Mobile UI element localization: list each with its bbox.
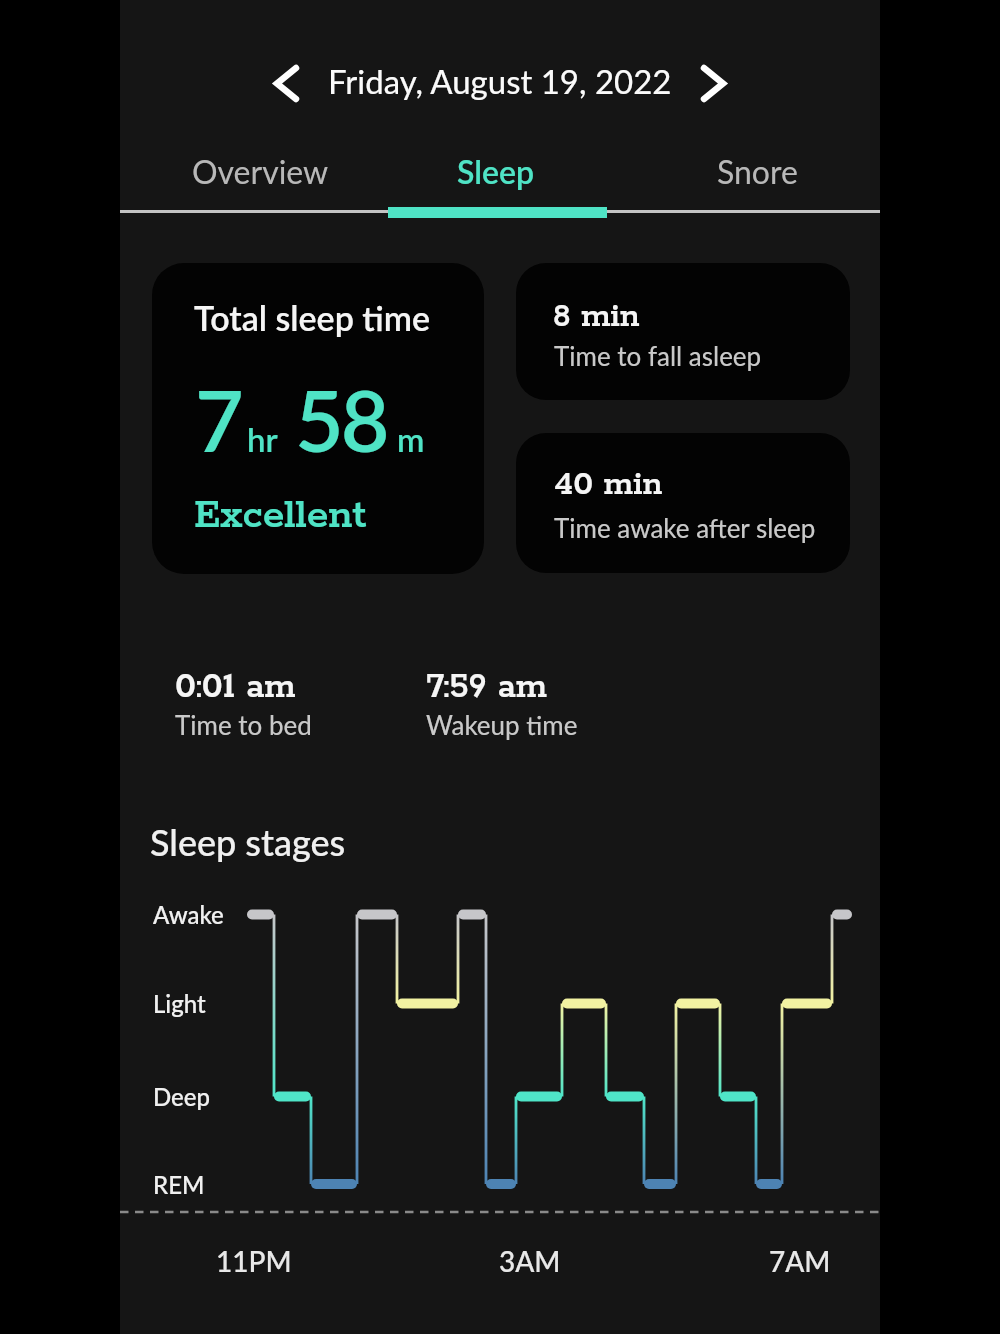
staticText: 8 min <box>553 297 640 338</box>
staticText: Excellent <box>194 491 367 541</box>
staticText: 3AM <box>499 1244 561 1278</box>
button[interactable]: 40 min <box>516 433 850 573</box>
staticText: REM <box>153 1170 205 1199</box>
staticText: 7:59 am <box>426 666 548 709</box>
staticText: Friday, August 19, 2022 <box>328 61 672 101</box>
button[interactable]: Total sleep time <box>152 263 484 574</box>
staticText: Sleep stages <box>150 820 346 863</box>
staticText: Deep <box>153 1082 211 1111</box>
button[interactable]: 8 min <box>516 263 850 400</box>
staticText: 58 <box>295 369 387 470</box>
staticText: Time to fall asleep <box>554 340 762 371</box>
staticText: 40 min <box>554 465 663 506</box>
staticText: Snore <box>717 152 798 190</box>
staticText: 0:01 am <box>175 666 296 709</box>
staticText: Time to bed <box>175 709 312 740</box>
staticText: Time awake after sleep <box>554 512 816 543</box>
staticText: 7AM <box>769 1244 831 1278</box>
button[interactable] <box>255 48 317 118</box>
button[interactable]: Snore <box>657 129 857 213</box>
button[interactable]: Overview <box>160 129 360 213</box>
staticText: Overview <box>192 152 329 190</box>
button[interactable]: Sleep <box>396 129 596 213</box>
staticText: 7 <box>195 369 244 470</box>
staticText: Light <box>153 989 206 1018</box>
staticText: Awake <box>153 900 224 929</box>
staticText: 11PM <box>216 1244 292 1278</box>
button[interactable] <box>683 48 745 118</box>
staticText: m <box>397 419 425 459</box>
staticText: Total sleep time <box>194 297 431 338</box>
staticText: hr <box>247 419 278 459</box>
staticText: Wakeup time <box>426 709 578 740</box>
staticText: Sleep <box>457 152 535 190</box>
